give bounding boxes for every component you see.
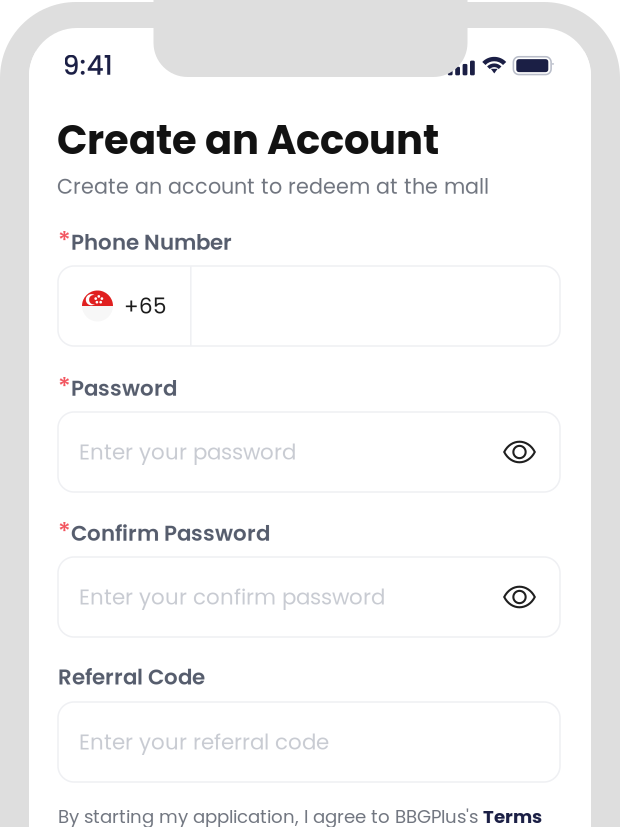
staticText: Confirm Password [71,518,270,548]
staticText: * [58,514,71,550]
staticText: Enter your confirm password [79,582,385,612]
staticText: Create an account to redeem at the mall [57,172,489,201]
button[interactable]: Show enter your confirm password [495,572,543,622]
staticText: Referral Code [58,662,205,692]
staticText: Enter your password [79,437,296,467]
staticText: Enter your referral code [79,727,329,757]
staticText: Password [71,373,177,403]
staticText: +65 [124,291,166,321]
staticText: By starting my application, I agree to B… [58,804,483,827]
staticText: Create an Account [57,112,439,168]
staticText: * [58,369,71,405]
staticText: Phone Number [71,227,232,257]
staticText: Terms [483,804,542,827]
staticText: 9:41 [62,47,112,84]
staticText: * [58,223,71,259]
button[interactable]: Show enter your password [495,427,543,477]
button[interactable]: Terms [483,804,542,827]
